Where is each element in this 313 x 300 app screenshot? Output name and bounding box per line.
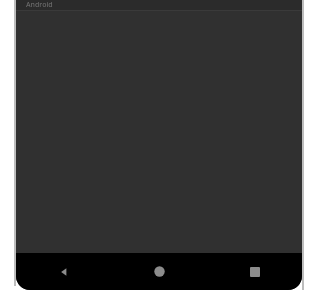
button[interactable]: Recent apps [207, 253, 302, 290]
staticText: Android [26, 0, 53, 10]
button[interactable]: Back [16, 253, 112, 290]
button[interactable]: Home [112, 253, 207, 290]
